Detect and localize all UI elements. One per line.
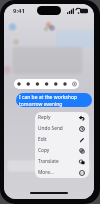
- staticText: More...: [38, 169, 79, 176]
- button[interactable]: Translate: [35, 156, 89, 167]
- button[interactable]: More...: [35, 167, 89, 178]
- button[interactable]: Copy: [35, 145, 89, 156]
- button[interactable]: Reply: [35, 112, 89, 123]
- staticText: Reply: [38, 114, 79, 121]
- staticText: Copy: [38, 147, 79, 154]
- staticText: Translate: [38, 158, 79, 165]
- staticText: Undo Send: [38, 125, 79, 132]
- button[interactable]: Edit: [35, 134, 89, 145]
- button[interactable]: Undo Send: [35, 123, 89, 134]
- staticText: I can be at the workshop tomorrow evenin…: [19, 94, 89, 107]
- staticText: 9:41: [13, 7, 25, 15]
- staticText: Edit: [38, 136, 79, 143]
